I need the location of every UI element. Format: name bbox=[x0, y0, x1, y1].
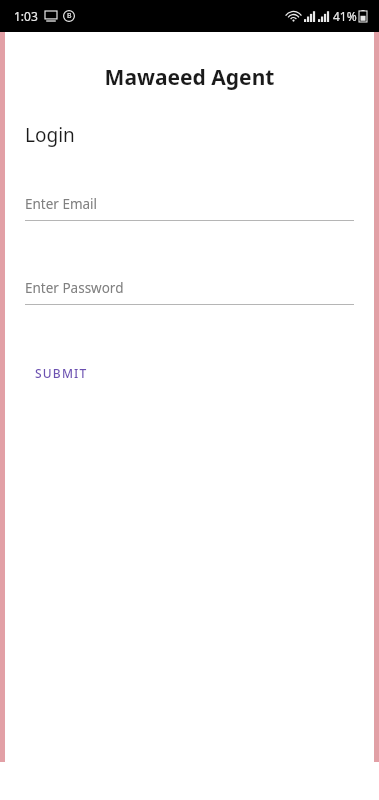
staticText: B bbox=[67, 11, 72, 21]
staticText: SUBMIT bbox=[35, 365, 88, 381]
button[interactable]: Enter Email bbox=[25, 195, 354, 221]
staticText: 41% bbox=[333, 8, 357, 24]
staticText: 1:03 bbox=[14, 8, 38, 24]
staticText: Enter Email bbox=[25, 195, 98, 213]
button[interactable]: Enter Password bbox=[25, 279, 354, 305]
staticText: Login bbox=[25, 122, 75, 148]
staticText: Enter Password bbox=[25, 279, 124, 297]
staticText: Mawaeed Agent bbox=[5, 63, 374, 92]
button[interactable]: SUBMIT bbox=[25, 357, 98, 389]
